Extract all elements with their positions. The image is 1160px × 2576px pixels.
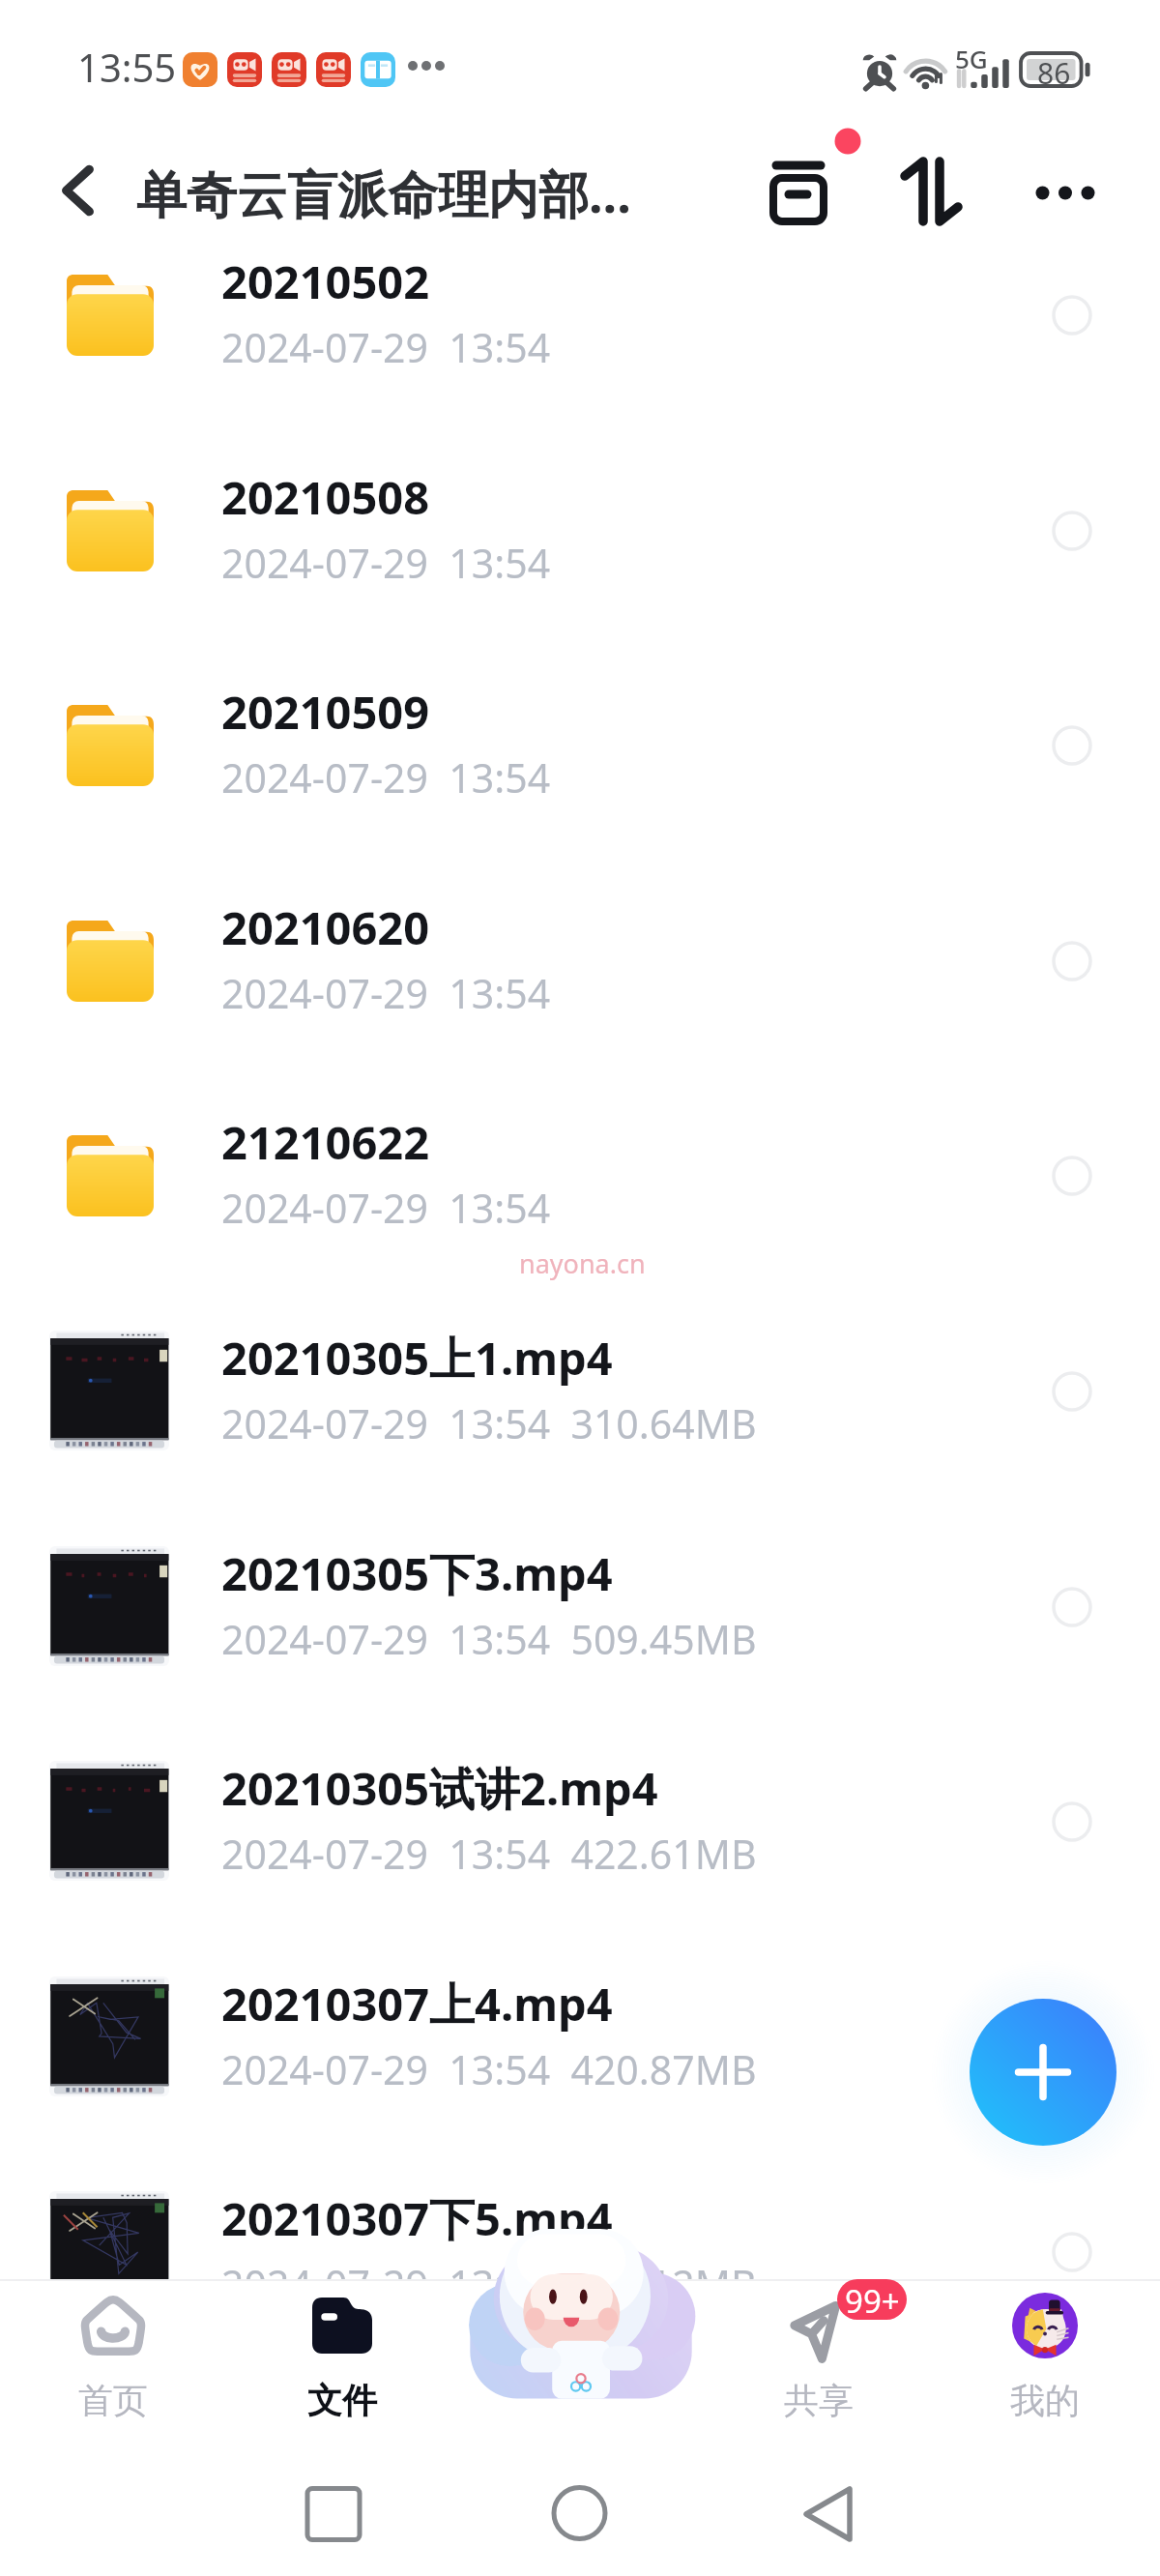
- button[interactable]: 20210305上1.mp4: [0, 1283, 1160, 1498]
- button[interactable]: Recent apps: [256, 2475, 411, 2553]
- staticText: 21210622: [221, 1111, 430, 1173]
- staticText: 20210307下5.mp4: [221, 2187, 613, 2249]
- button[interactable]: 我的: [939, 2279, 1151, 2448]
- button[interactable]: More: [1007, 145, 1123, 242]
- staticText: 共享: [784, 2379, 854, 2422]
- staticText: 20210305试讲2.mp4: [221, 1757, 658, 1819]
- button[interactable]: Select 21210622: [1024, 1127, 1120, 1224]
- button[interactable]: 21210622: [0, 1068, 1160, 1282]
- staticText: 20210307上4.mp4: [221, 1973, 613, 2034]
- staticText: nayona.cn: [519, 1245, 646, 1281]
- button[interactable]: Select 20210620: [1024, 913, 1120, 1010]
- staticText: 99+: [845, 2279, 900, 2320]
- button[interactable]: Sort: [876, 132, 987, 250]
- staticText: 20210509: [221, 681, 430, 743]
- staticText: 2024-07-29 13:54 310.64MB: [221, 1396, 757, 1450]
- button[interactable]: Select 20210305下3.mp4: [1024, 1559, 1120, 1655]
- button[interactable]: 20210509: [0, 637, 1160, 852]
- button[interactable]: 20210620: [0, 853, 1160, 1068]
- staticText: 2024-07-29 13:54 420.87MB: [221, 2042, 757, 2096]
- button[interactable]: 20210307上4.mp4: [0, 1929, 1160, 2144]
- staticText: 86: [1037, 53, 1071, 93]
- staticText: 2024-07-29 13:54: [221, 750, 551, 805]
- button[interactable]: Add: [970, 1999, 1116, 2146]
- button[interactable]: 20210305试讲2.mp4: [0, 1713, 1160, 1928]
- button[interactable]: Back: [39, 151, 118, 230]
- staticText: 20210305下3.mp4: [221, 1542, 613, 1604]
- staticText: 2024-07-29 13:54: [221, 966, 551, 1020]
- button[interactable]: Select 20210502: [1024, 267, 1120, 364]
- staticText: 13:55: [77, 41, 177, 93]
- staticText: 2024-07-29 13:54: [221, 1181, 551, 1235]
- staticText: 20210502: [221, 250, 430, 312]
- button[interactable]: Select 20210305试讲2.mp4: [1024, 1773, 1120, 1870]
- staticText: 20210305上1.mp4: [221, 1327, 613, 1389]
- button[interactable]: 20210508: [0, 423, 1160, 637]
- button[interactable]: 20210305下3.mp4: [0, 1499, 1160, 1713]
- staticText: 2024-07-29 13:54 509.45MB: [221, 1612, 757, 1666]
- button[interactable]: Back: [741, 2475, 896, 2553]
- staticText: 文件: [307, 2379, 377, 2422]
- button[interactable]: Select 20210305上1.mp4: [1024, 1343, 1120, 1440]
- staticText: 2024-07-29 13:54: [221, 320, 551, 374]
- button[interactable]: 20210502: [0, 207, 1160, 422]
- button[interactable]: 20210307下5.mp4: [0, 2144, 1160, 2358]
- button[interactable]: Select 20210509: [1024, 697, 1120, 794]
- staticText: 2024-07-29 13:54 398.12MB: [221, 2257, 757, 2311]
- staticText: 2024-07-29 13:54: [221, 536, 551, 590]
- staticText: 2024-07-29 13:54 422.61MB: [221, 1827, 757, 1881]
- button[interactable]: 首页: [7, 2279, 219, 2448]
- button[interactable]: Transfer list: [740, 110, 866, 275]
- button[interactable]: Select 20210508: [1024, 483, 1120, 579]
- button[interactable]: Select 20210307下5.mp4: [1024, 2204, 1120, 2300]
- button[interactable]: 共享: [712, 2279, 925, 2448]
- button[interactable]: Home: [503, 2474, 657, 2552]
- staticText: 首页: [78, 2379, 148, 2422]
- staticText: 5G: [955, 42, 988, 75]
- staticText: 我的: [1010, 2379, 1080, 2422]
- button[interactable]: 文件: [236, 2279, 449, 2448]
- staticText: 20210620: [221, 896, 430, 958]
- staticText: 20210508: [221, 466, 430, 528]
- button[interactable]: Select 20210307上4.mp4: [1024, 1989, 1120, 2086]
- staticText: 单奇云盲派命理内部...: [136, 159, 631, 227]
